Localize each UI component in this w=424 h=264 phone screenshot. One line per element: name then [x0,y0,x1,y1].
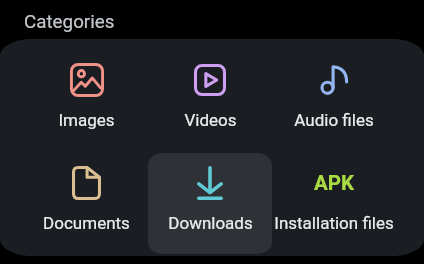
staticText: Audio files [294,110,374,130]
button[interactable]: APK [272,153,396,254]
staticText: APK [314,171,355,195]
button[interactable]: Audio files [272,39,396,147]
staticText: Installation files [274,213,394,233]
staticText: Downloads [168,213,253,233]
staticText: Images [58,110,115,130]
staticText: Categories [24,11,115,33]
button[interactable]: Documents [25,153,148,254]
button[interactable]: Downloads [148,153,272,254]
staticText: Videos [184,110,237,130]
button[interactable]: Images [25,39,148,147]
staticText: Documents [43,213,130,233]
button[interactable]: Videos [148,39,272,147]
